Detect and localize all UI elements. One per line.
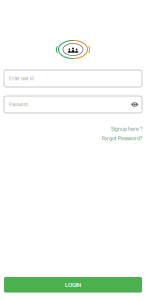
button[interactable]: Signup here ? — [111, 126, 142, 132]
staticText: Signup here ? — [111, 126, 142, 132]
staticText: Forgot Password? — [102, 136, 142, 142]
button[interactable]: Enter user id — [4, 70, 142, 87]
button[interactable]: Password — [4, 96, 142, 113]
button[interactable]: Forgot Password? — [102, 136, 142, 142]
staticText: Enter user id — [9, 76, 34, 81]
staticText: LOGIN — [65, 281, 81, 288]
button[interactable]: LOGIN — [4, 277, 142, 293]
staticText: Password — [9, 102, 28, 107]
